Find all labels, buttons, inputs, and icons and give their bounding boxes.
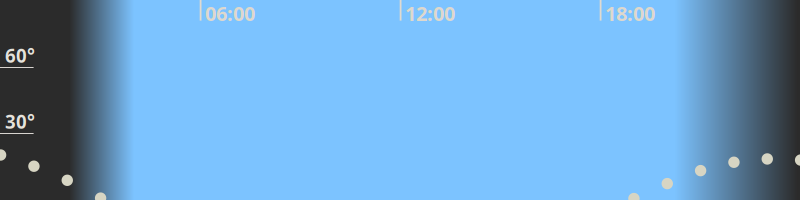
staticText: 06:00 [205, 0, 255, 27]
staticText: 30° [5, 109, 35, 134]
staticText: 18:00 [605, 0, 655, 27]
staticText: 60° [5, 43, 35, 68]
staticText: 12:00 [405, 0, 455, 27]
